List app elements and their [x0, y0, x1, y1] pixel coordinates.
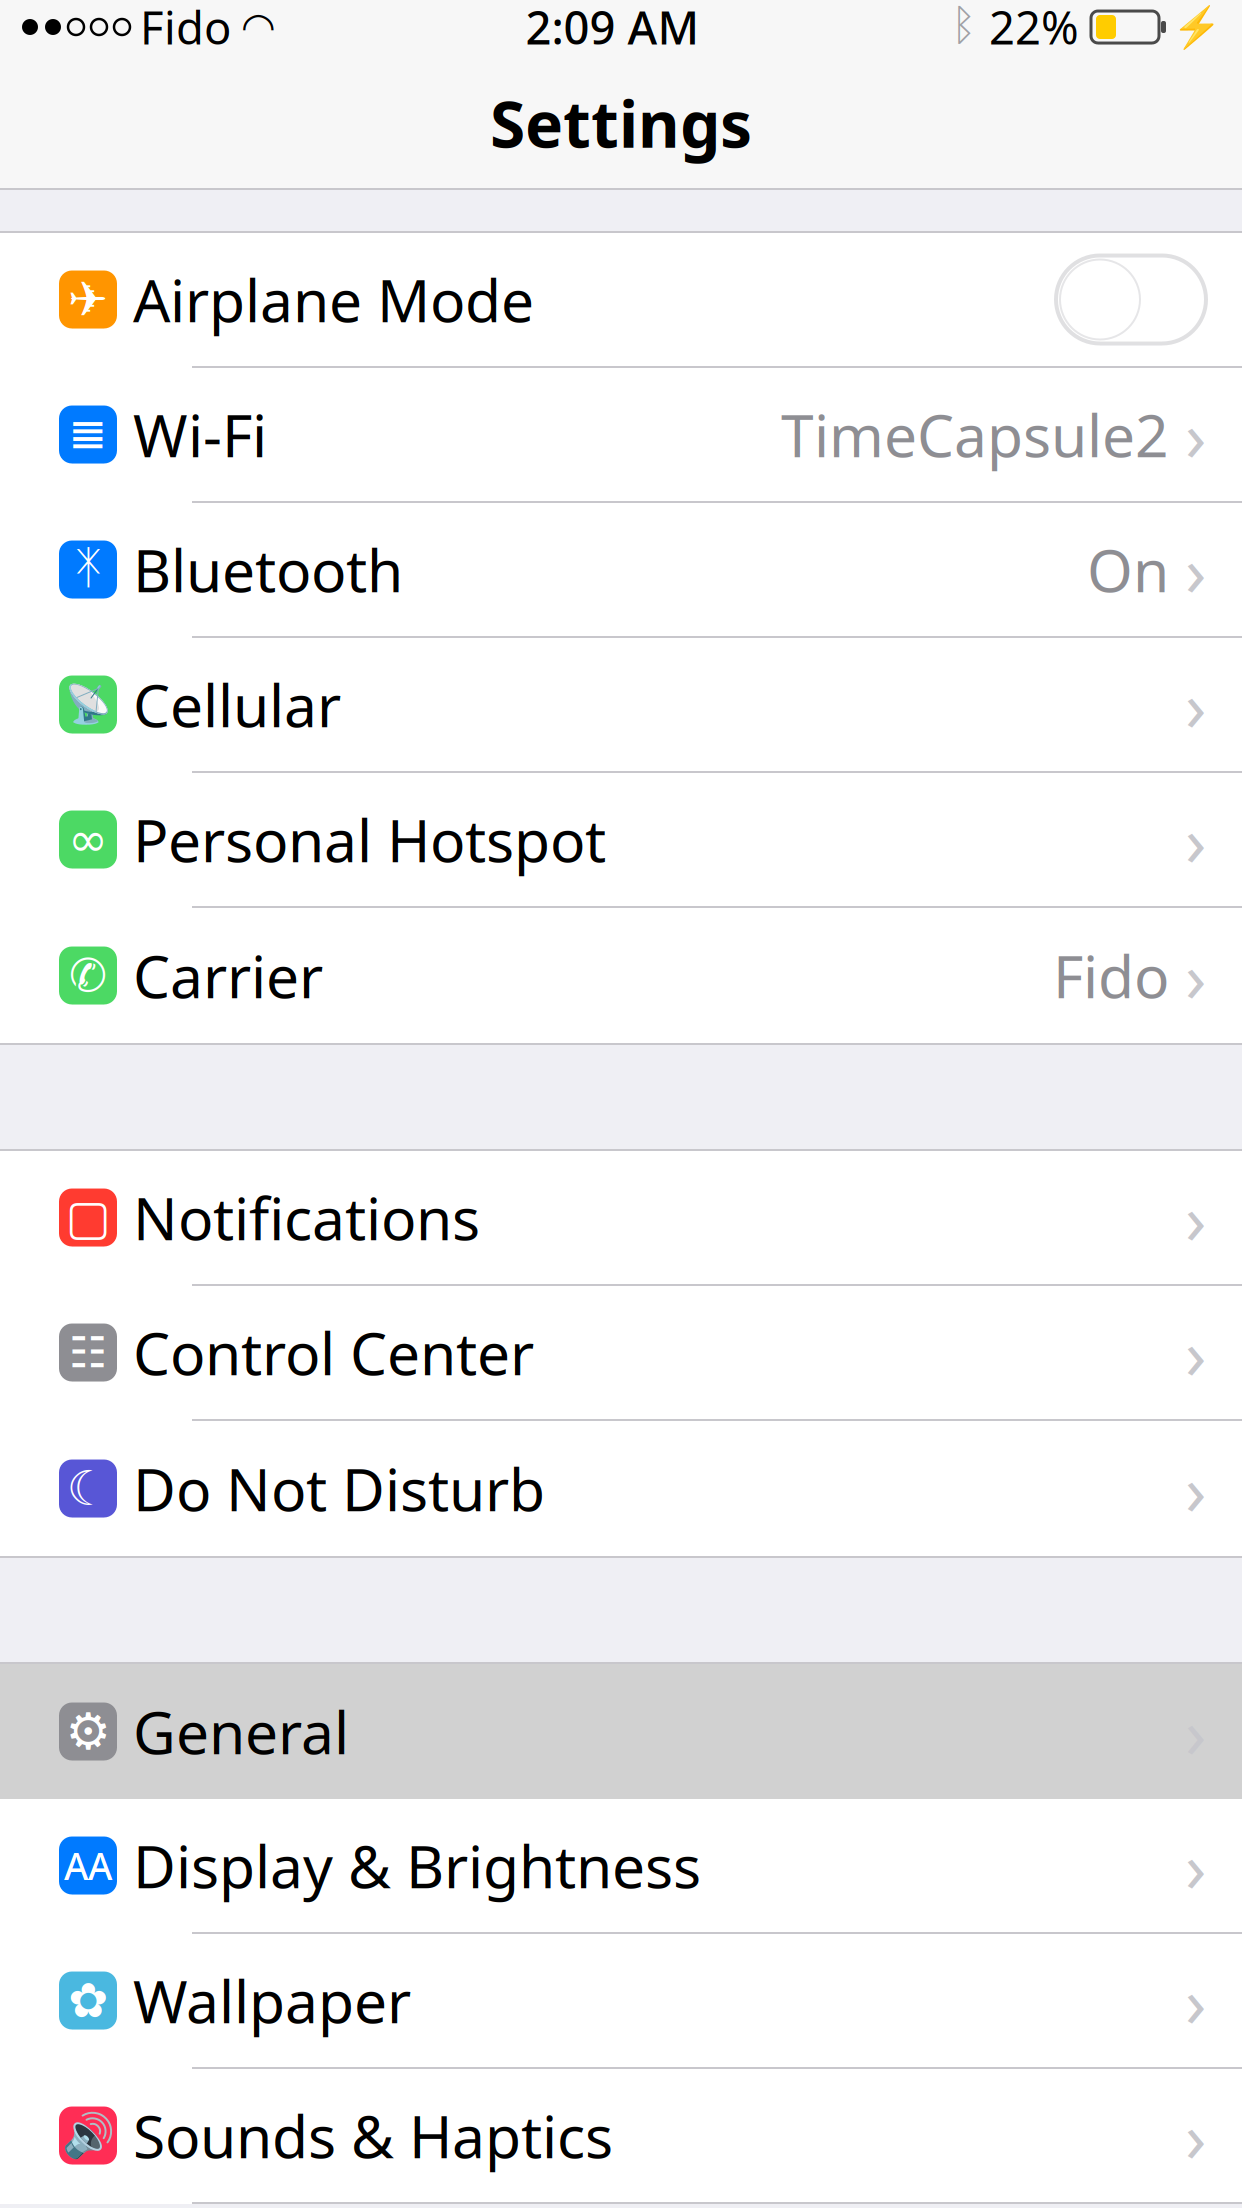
button[interactable]: ✈	[0, 233, 1242, 368]
staticText: Fido	[140, 0, 231, 57]
staticText: Wallpaper	[133, 1961, 411, 2039]
staticText: 📡	[65, 683, 111, 726]
staticText: Notifications	[133, 1178, 480, 1256]
staticText: 22%	[989, 0, 1079, 57]
staticText: ›	[1185, 1819, 1206, 1912]
staticText: General	[133, 1692, 349, 1770]
staticText: Cellular	[133, 665, 341, 743]
staticText: TimeCapsule2	[781, 395, 1169, 473]
staticText: Display & Brightness	[133, 1826, 701, 1904]
button[interactable]: 📡	[0, 638, 1242, 773]
staticText: 2:09 AM	[525, 0, 699, 57]
staticText: Do Not Disturb	[133, 1449, 545, 1527]
button[interactable]: 𝌆	[0, 368, 1242, 503]
staticText: ⚙	[65, 1703, 110, 1760]
staticText: ⚡	[1172, 4, 1222, 50]
button[interactable]: ∞	[0, 773, 1242, 908]
staticText: ›	[1185, 2089, 1206, 2182]
staticText: ›	[1185, 523, 1206, 616]
staticText: ✆	[69, 950, 107, 1001]
staticText: ›	[1185, 1954, 1206, 2047]
staticText: Settings	[490, 80, 752, 165]
staticText: ›	[1185, 1442, 1206, 1535]
staticText: ›	[1185, 658, 1206, 751]
staticText: Carrier	[133, 936, 323, 1014]
staticText: ✈	[68, 272, 108, 327]
button[interactable]: ☾	[0, 1421, 1242, 1556]
staticText: Personal Hotspot	[133, 800, 606, 878]
button[interactable]: AA	[0, 1799, 1242, 1934]
staticText: ◠	[243, 4, 274, 50]
staticText: On	[1087, 530, 1169, 608]
button[interactable]: 🔊	[0, 2069, 1242, 2204]
staticText: Sounds & Haptics	[133, 2096, 613, 2174]
staticText: ›	[1185, 1171, 1206, 1264]
staticText: ›	[1185, 388, 1206, 481]
staticText: 𝌆	[70, 412, 106, 457]
button[interactable]: ▢	[0, 1151, 1242, 1286]
staticText: ›	[1185, 793, 1206, 886]
staticText: ›	[1185, 1306, 1206, 1399]
button[interactable]: ☷	[0, 1286, 1242, 1421]
button[interactable]: ᛡ	[0, 503, 1242, 638]
button[interactable]: ✿	[0, 1934, 1242, 2069]
staticText: ᛡ	[74, 547, 101, 592]
staticText: ›	[1185, 929, 1206, 1022]
staticText: Fido	[1053, 936, 1169, 1014]
staticText: Airplane Mode	[133, 260, 534, 338]
staticText: Control Center	[133, 1313, 534, 1391]
staticText: ∞	[68, 812, 108, 867]
staticText: 🔊	[61, 2111, 114, 2160]
button[interactable]: ⚙	[0, 1664, 1242, 1799]
staticText: ☾	[66, 1461, 109, 1516]
staticText: ☷	[69, 1328, 107, 1377]
staticText: Bluetooth	[133, 530, 403, 608]
staticText: AA	[64, 1841, 112, 1890]
staticText: ▢	[65, 1190, 110, 1245]
staticText: ᛒ	[951, 6, 977, 48]
staticText: Wi-Fi	[133, 395, 267, 473]
button[interactable]: ✆	[0, 908, 1242, 1043]
staticText: ✿	[68, 1973, 108, 2028]
